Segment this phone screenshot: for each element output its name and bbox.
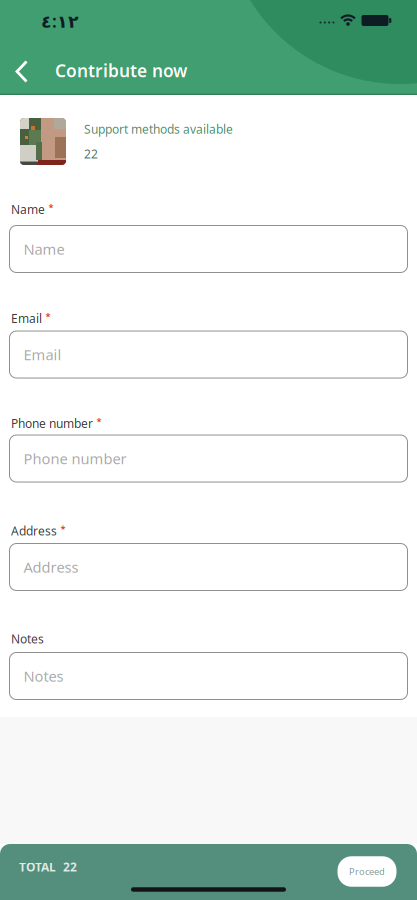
- button[interactable]: Support methods available: [20, 118, 417, 165]
- staticText: *: [96, 415, 101, 428]
- staticText: Contribute now: [55, 59, 187, 82]
- button[interactable]: Email: [9, 331, 407, 378]
- button[interactable]: Name: [9, 225, 407, 272]
- staticText: ٤:١٢: [41, 9, 79, 32]
- staticText: *: [48, 201, 53, 214]
- staticText: 22: [63, 859, 77, 875]
- button[interactable]: Address: [9, 543, 407, 590]
- staticText: *: [45, 310, 50, 323]
- staticText: Address: [23, 557, 78, 577]
- staticText: Phone number: [11, 415, 93, 431]
- staticText: Notes: [11, 631, 44, 647]
- staticText: 22: [84, 146, 98, 162]
- staticText: Email: [23, 345, 61, 364]
- staticText: Name: [11, 201, 45, 217]
- button[interactable]: Proceed: [337, 856, 396, 887]
- staticText: Proceed: [349, 865, 385, 878]
- staticText: Address: [11, 523, 57, 539]
- staticText: Notes: [23, 666, 63, 686]
- staticText: TOTAL: [19, 859, 56, 875]
- staticText: Support methods available: [84, 121, 233, 137]
- button[interactable]: [7, 56, 37, 86]
- button[interactable]: Phone number: [9, 435, 407, 482]
- staticText: *: [60, 523, 65, 535]
- button[interactable]: Notes: [9, 652, 407, 699]
- staticText: Email: [11, 310, 42, 326]
- staticText: Phone number: [23, 449, 126, 468]
- staticText: Name: [23, 239, 64, 259]
